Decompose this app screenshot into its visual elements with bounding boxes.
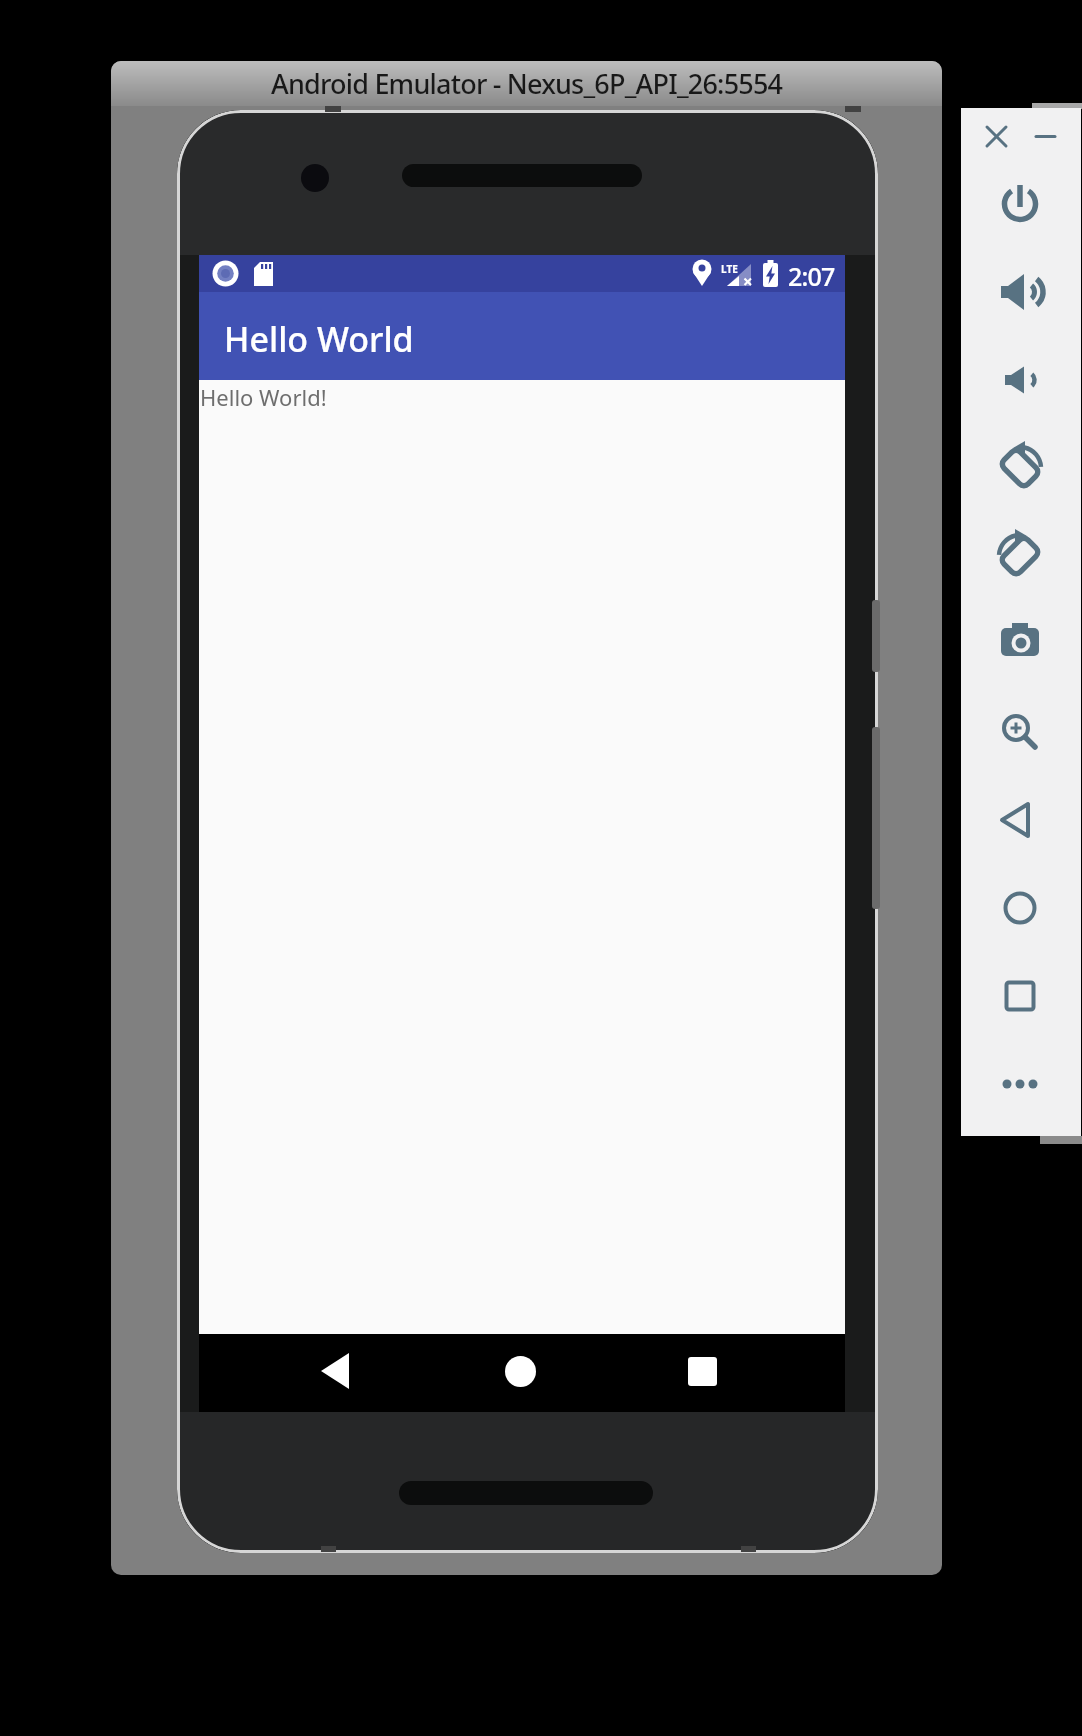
button[interactable] — [994, 706, 1046, 758]
button[interactable] — [994, 970, 1046, 1022]
staticText: Android Emulator - Nexus_6P_API_26:5554 — [271, 65, 783, 102]
staticText: 2:07 — [788, 259, 835, 293]
button[interactable] — [994, 1058, 1046, 1110]
staticText: LTE — [721, 262, 738, 276]
staticText: Hello World — [224, 316, 414, 362]
button[interactable] — [994, 442, 1046, 494]
button[interactable] — [681, 1350, 723, 1392]
button[interactable] — [499, 1350, 541, 1392]
button[interactable] — [994, 354, 1046, 406]
button[interactable] — [974, 114, 1018, 158]
button[interactable] — [994, 266, 1046, 318]
staticText: Hello World! — [200, 382, 327, 412]
button[interactable] — [994, 178, 1046, 230]
button[interactable] — [994, 794, 1046, 846]
button[interactable] — [316, 1350, 358, 1392]
button[interactable] — [994, 882, 1046, 934]
button[interactable] — [994, 618, 1046, 670]
button[interactable] — [994, 530, 1046, 582]
button[interactable] — [1023, 114, 1067, 158]
